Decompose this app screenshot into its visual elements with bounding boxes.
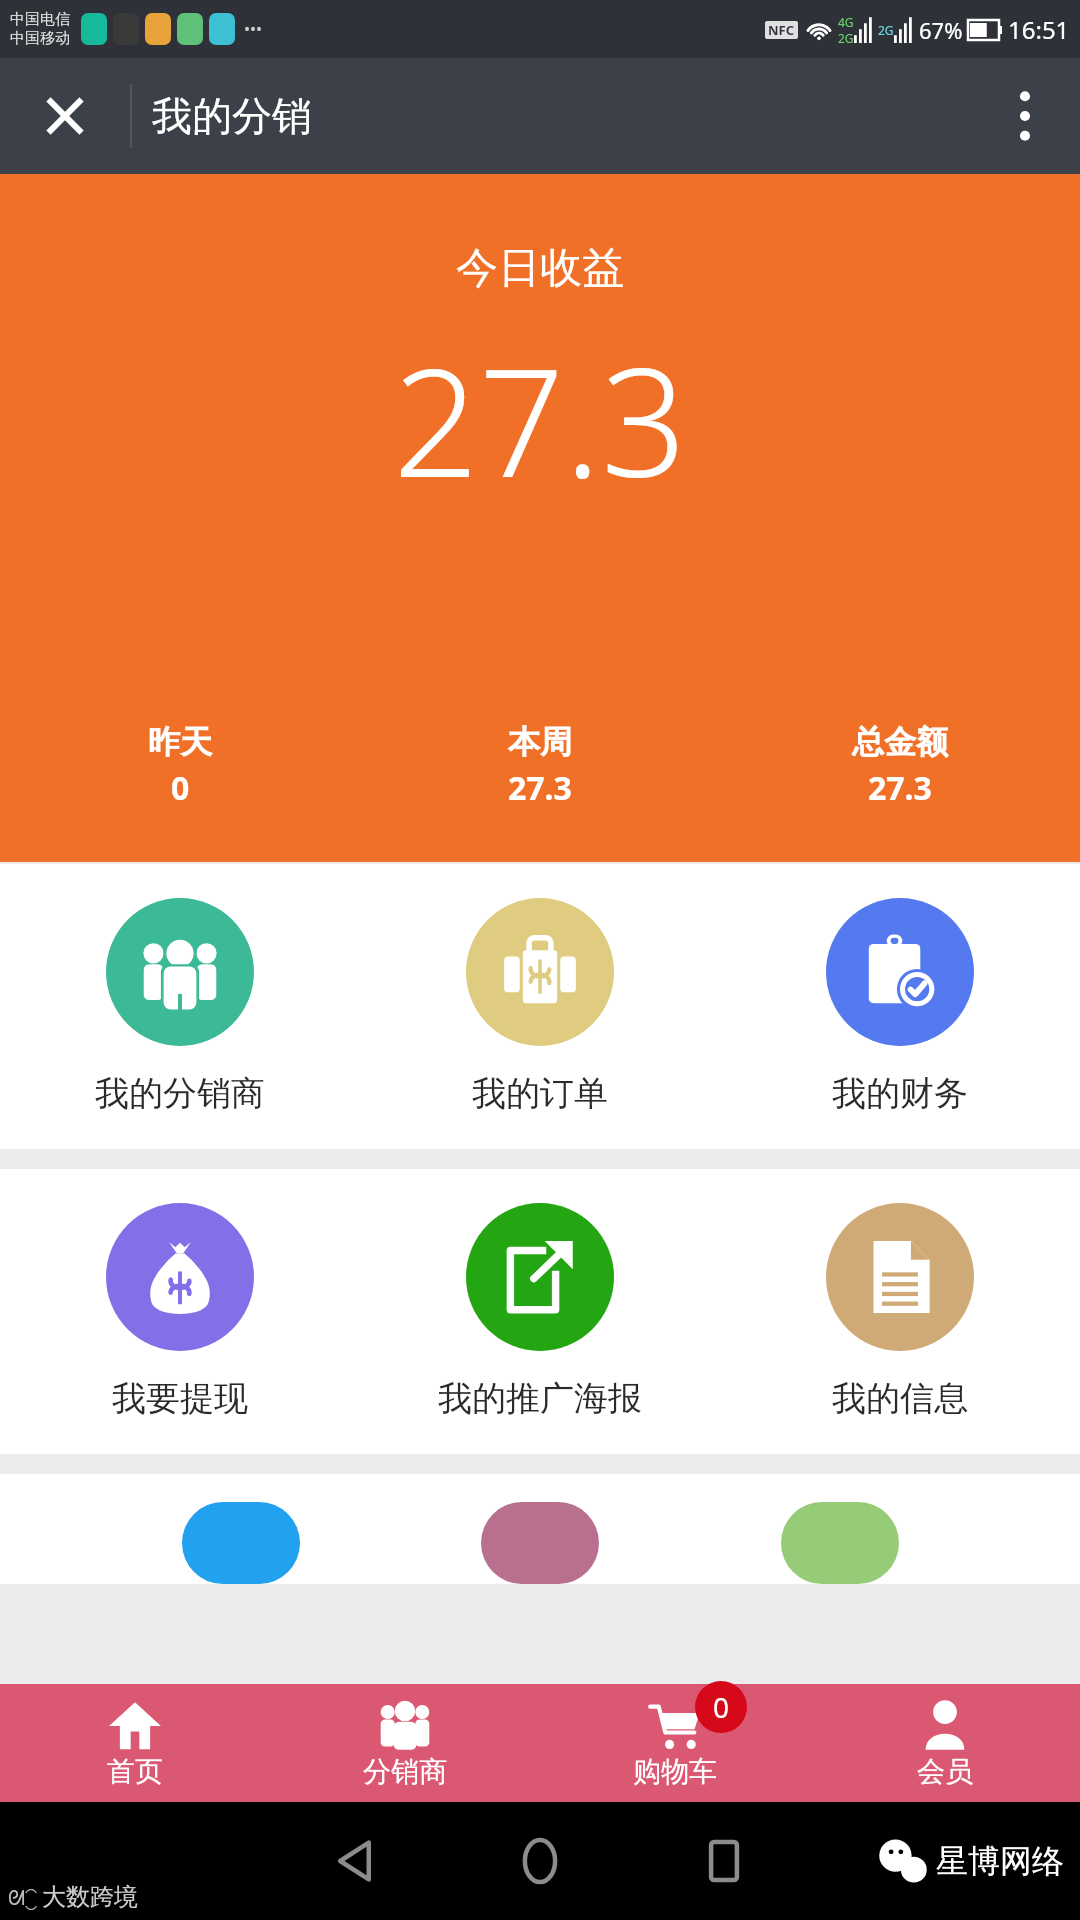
staticText: 购物车	[633, 1754, 717, 1789]
staticText: 我的分销商	[95, 1072, 265, 1115]
staticText: 星博网络	[936, 1841, 1064, 1881]
staticText: NFC	[768, 21, 795, 39]
staticText: 首页	[107, 1754, 163, 1789]
staticText: 中国电信	[10, 10, 70, 29]
staticText: 我的订单	[472, 1072, 608, 1115]
button[interactable]: 总金额	[720, 722, 1080, 810]
staticText: 今日收益	[456, 242, 624, 295]
staticText: ᘛ⁐	[8, 1884, 38, 1911]
button[interactable]: More options	[970, 58, 1080, 174]
staticText: 分销商	[363, 1754, 447, 1789]
button[interactable]: Back	[325, 1829, 389, 1893]
staticText: 27.3	[508, 766, 572, 810]
staticText: 大数跨境	[42, 1882, 138, 1912]
button[interactable]: 我要提现	[0, 1203, 360, 1420]
staticText: 0	[713, 1688, 730, 1726]
staticText: 会员	[917, 1754, 973, 1789]
button[interactable]: Close	[0, 58, 130, 174]
button[interactable]: 分销商	[270, 1684, 540, 1802]
staticText: 我的推广海报	[438, 1377, 642, 1420]
staticText: 67%	[919, 15, 963, 45]
staticText: 本周	[508, 722, 572, 762]
staticText: 27.3	[868, 766, 932, 810]
button[interactable]: 我的分销商	[0, 898, 360, 1115]
button[interactable]: 首页	[0, 1684, 270, 1802]
button[interactable]: Recent apps	[692, 1829, 756, 1893]
staticText: 0	[171, 766, 190, 810]
staticText: 我的分销	[152, 91, 312, 141]
staticText: •••	[244, 18, 263, 40]
button[interactable]: Home	[508, 1829, 572, 1893]
staticText: 16:51	[1008, 13, 1070, 46]
button[interactable]: 我的财务	[720, 898, 1080, 1115]
staticText: 4G	[838, 14, 854, 30]
button[interactable]: 本周	[360, 722, 720, 810]
staticText: 2G	[838, 30, 854, 46]
staticText: 我的信息	[832, 1377, 968, 1420]
staticText: 总金额	[852, 722, 948, 762]
button[interactable]: 会员	[810, 1684, 1080, 1802]
staticText: 我的财务	[832, 1072, 968, 1115]
staticText: 2G	[878, 22, 894, 38]
button[interactable]: 我的信息	[720, 1203, 1080, 1420]
staticText: 昨天	[148, 722, 212, 762]
button[interactable]: 我的推广海报	[360, 1203, 720, 1420]
staticText: 27.3	[393, 317, 687, 521]
staticText: 中国移动	[10, 29, 70, 48]
button[interactable]: 昨天	[0, 722, 360, 810]
button[interactable]: 0	[540, 1684, 810, 1802]
button[interactable]: 我的订单	[360, 898, 720, 1115]
staticText: 我要提现	[112, 1377, 248, 1420]
